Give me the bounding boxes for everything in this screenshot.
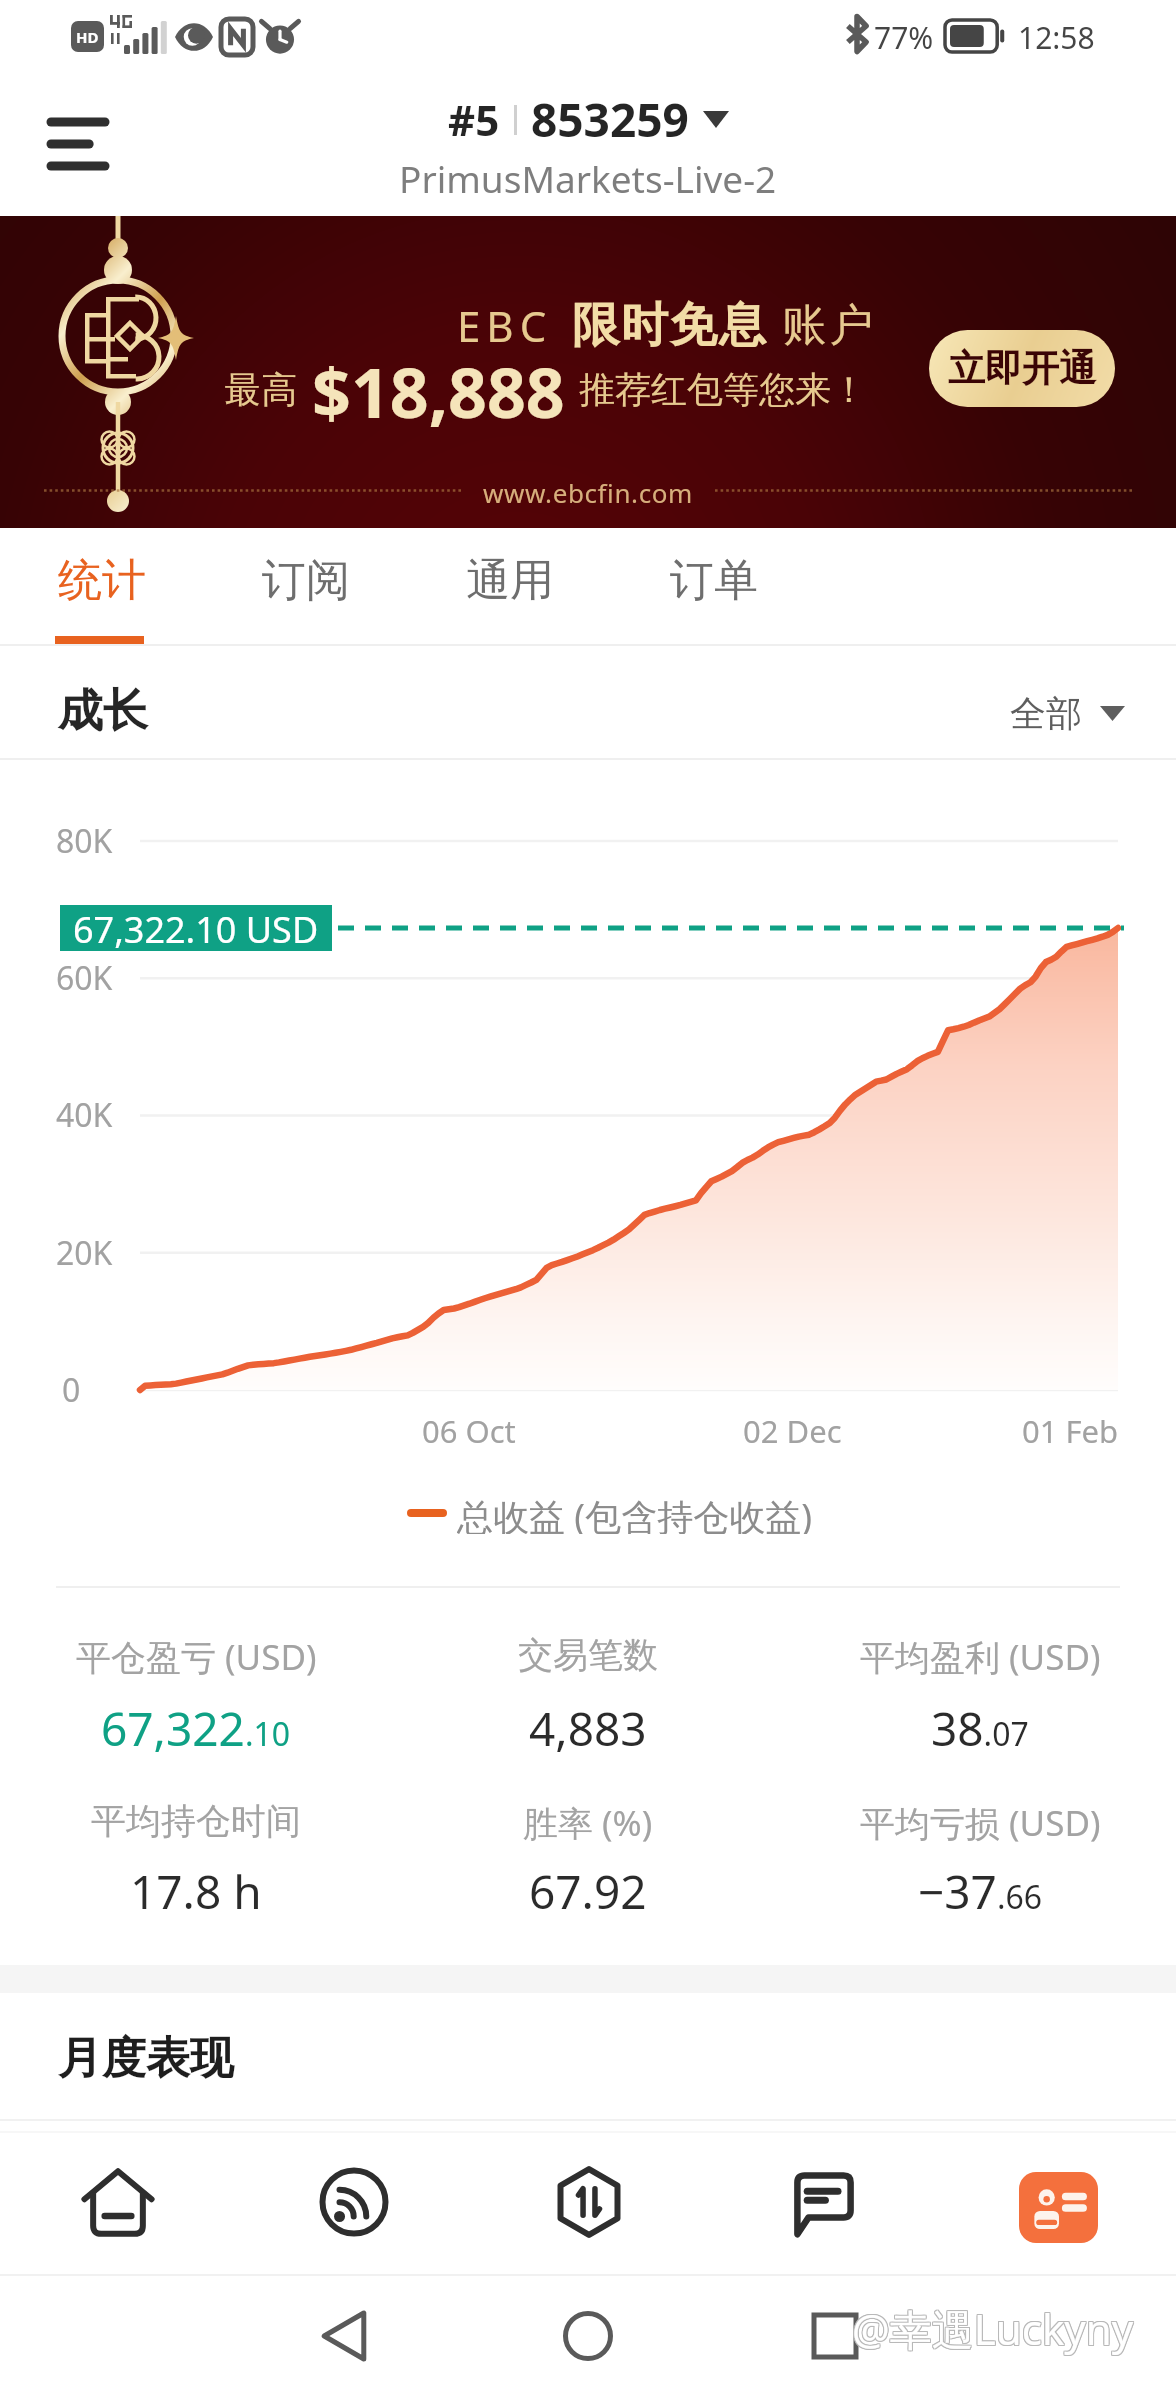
button[interactable]: Trade — [471, 2119, 706, 2276]
staticText: 40K — [56, 1093, 113, 1137]
staticText: @幸遇Luckyny — [851, 2299, 1133, 2356]
staticText: 0 — [62, 1368, 81, 1412]
button[interactable]: 立即开通 — [929, 330, 1115, 407]
staticText: @幸遇Luckyny — [851, 2301, 1133, 2358]
staticText: 月度表现 — [58, 2031, 234, 2086]
staticText: 01 Feb — [1022, 1410, 1119, 1452]
staticText: 77% — [874, 17, 934, 58]
button[interactable]: 订单 — [667, 528, 760, 646]
staticText: 853259 — [531, 88, 689, 151]
staticText: 全部 — [1010, 691, 1082, 736]
staticText: @幸遇Luckyny — [853, 2300, 1135, 2357]
button[interactable]: #5 — [0, 88, 1176, 203]
staticText: 12:58 — [1018, 17, 1095, 58]
staticText: 67,322.10 — [101, 1697, 291, 1760]
staticText: @幸遇Luckyny — [852, 2299, 1134, 2356]
staticText: @幸遇Luckyny — [853, 2299, 1135, 2356]
staticText: 平均亏损 (USD) — [860, 1799, 1101, 1847]
button[interactable]: Profile — [941, 2119, 1176, 2276]
button[interactable]: Home — [536, 2284, 640, 2388]
staticText: 17.8 h — [130, 1860, 262, 1923]
button[interactable]: Recents — [783, 2284, 887, 2388]
staticText: www.ebcfin.com — [483, 475, 693, 505]
staticText: 67,322.10 USD — [73, 905, 319, 951]
button[interactable]: 全部 — [1010, 691, 1125, 736]
staticText: #5 — [448, 91, 500, 148]
staticText: 02 Dec — [743, 1410, 842, 1452]
staticText: @幸遇Luckyny — [852, 2300, 1134, 2357]
staticText: @幸遇Luckyny — [853, 2301, 1135, 2358]
staticText: 67.92 — [529, 1860, 647, 1923]
staticText: 80K — [56, 819, 113, 863]
button[interactable]: EBC — [0, 216, 1176, 528]
staticText: HD — [76, 27, 99, 47]
button[interactable]: 订阅 — [259, 528, 352, 646]
staticText: 平仓盈亏 (USD) — [76, 1633, 317, 1681]
staticText: 推荐红包等您来！ — [579, 367, 867, 412]
button[interactable]: 通用 — [463, 528, 556, 646]
staticText: @幸遇Luckyny — [852, 2301, 1134, 2358]
staticText: 最高 — [224, 367, 298, 412]
staticText: 通用 — [466, 553, 554, 608]
staticText: 限时免息 — [571, 296, 767, 355]
staticText: 交易笔数 — [518, 1633, 658, 1677]
staticText: 平均盈利 (USD) — [860, 1633, 1101, 1681]
button[interactable]: Back — [292, 2284, 396, 2388]
button[interactable]: Signals — [236, 2119, 471, 2276]
staticText: 账户 — [781, 298, 875, 353]
staticText: 订阅 — [262, 553, 350, 608]
staticText: 总收益 (包含持仓收益) — [457, 1492, 812, 1534]
staticText: 60K — [56, 956, 113, 1000]
staticText: @幸遇Luckyny — [851, 2300, 1133, 2357]
staticText: 统计 — [58, 553, 146, 608]
staticText: 4,883 — [529, 1697, 647, 1760]
staticText: 成长 — [58, 683, 148, 740]
staticText: EBC — [457, 297, 553, 354]
button[interactable]: Menu — [28, 96, 128, 192]
staticText: 订单 — [670, 553, 758, 608]
staticText: PrimusMarkets-Live-2 — [399, 153, 777, 203]
button[interactable]: Home — [0, 2119, 236, 2276]
staticText: 38.07 — [931, 1697, 1029, 1760]
button[interactable]: 统计 — [55, 528, 148, 646]
staticText: 平均持仓时间 — [91, 1799, 301, 1843]
staticText: 06 Oct — [422, 1410, 516, 1452]
staticText: 胜率 (%) — [523, 1799, 653, 1847]
staticText: $18,888 — [312, 345, 565, 438]
staticText: 立即开通 — [948, 345, 1096, 392]
staticText: −37.66 — [918, 1860, 1043, 1923]
staticText: 20K — [56, 1231, 113, 1275]
button[interactable]: Messages — [706, 2119, 941, 2276]
